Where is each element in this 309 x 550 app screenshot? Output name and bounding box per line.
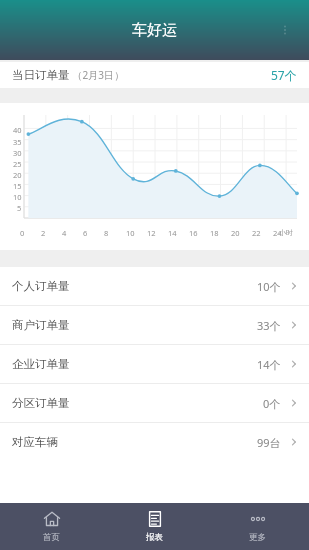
button[interactable]: 对应车辆: [0, 423, 309, 461]
staticText: 5: [17, 203, 22, 213]
staticText: 更多: [249, 532, 266, 543]
staticText: 16: [189, 228, 198, 238]
staticText: 0个: [263, 396, 281, 411]
staticText: 分区订单量: [12, 396, 70, 410]
staticText: （2月3日）: [70, 68, 125, 82]
staticText: 6: [83, 228, 88, 238]
button[interactable]: 企业订单量: [0, 345, 309, 383]
button[interactable]: 报表: [103, 503, 206, 550]
button[interactable]: 分区订单量: [0, 384, 309, 422]
staticText: 个人订单量: [12, 279, 70, 293]
staticText: 当日订单量: [12, 68, 70, 82]
staticText: 14: [168, 228, 177, 238]
staticText: 4: [62, 228, 67, 238]
staticText: 35: [13, 137, 22, 147]
staticText: 57个: [271, 67, 297, 83]
button[interactable]: 更多: [206, 503, 309, 550]
button[interactable]: More options: [273, 18, 297, 42]
staticText: 14个: [257, 357, 281, 372]
staticText: 企业订单量: [12, 357, 70, 371]
staticText: 20: [13, 170, 22, 180]
staticText: 报表: [146, 532, 163, 543]
staticText: 30: [13, 148, 22, 158]
staticText: 车好运: [132, 21, 177, 40]
staticText: 33个: [257, 318, 281, 333]
staticText: 22: [252, 228, 261, 238]
staticText: 小时: [279, 228, 293, 237]
staticText: 10: [126, 228, 135, 238]
staticText: 2: [41, 228, 46, 238]
staticText: 99台: [257, 435, 281, 450]
staticText: 15: [13, 181, 22, 191]
button[interactable]: 商户订单量: [0, 306, 309, 344]
staticText: 18: [210, 228, 219, 238]
staticText: 10个: [257, 279, 281, 294]
button[interactable]: 当日订单量: [0, 62, 309, 88]
staticText: 12: [147, 228, 156, 238]
staticText: 25: [13, 159, 22, 169]
staticText: 8: [104, 228, 109, 238]
staticText: 10: [13, 192, 22, 202]
button[interactable]: 首页: [0, 503, 103, 550]
staticText: 20: [231, 228, 240, 238]
staticText: 商户订单量: [12, 318, 70, 332]
button[interactable]: 个人订单量: [0, 267, 309, 305]
staticText: 40: [13, 125, 22, 135]
staticText: 对应车辆: [12, 435, 58, 449]
staticText: 0: [20, 228, 25, 238]
staticText: 首页: [43, 532, 60, 543]
staticText: 24: [273, 228, 282, 238]
